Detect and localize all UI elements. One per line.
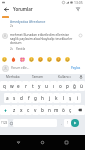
button[interactable]: o (57, 81, 64, 91)
staticText: . (61, 121, 62, 126)
staticText: u (45, 83, 48, 89)
button[interactable]: mehmet Bunadan etiketledim ellerinize sa… (2, 33, 83, 51)
button[interactable]: Shift (0, 105, 11, 115)
button[interactable]: b (39, 105, 46, 115)
staticText: 2s (10, 24, 14, 28)
staticText: ö (62, 107, 65, 113)
staticText: q (3, 83, 6, 89)
staticText: j (49, 95, 51, 101)
button[interactable]: Emoji (55, 56, 61, 62)
staticText: n (48, 107, 51, 113)
button[interactable]: j (46, 93, 53, 103)
button[interactable]: i (74, 93, 81, 103)
button[interactable]: h (39, 93, 46, 103)
staticText: o (59, 83, 62, 89)
button[interactable]: Emoji (37, 56, 43, 62)
staticText: l (63, 95, 65, 101)
button[interactable]: c (25, 105, 32, 115)
staticText: s (13, 95, 16, 101)
button[interactable]: e (15, 81, 22, 91)
staticText: #medyatica #freelance (10, 19, 46, 23)
button[interactable]: z (11, 105, 18, 115)
button[interactable]: Merhaba (0, 74, 25, 80)
staticText: d (20, 95, 23, 101)
button[interactable]: k (53, 93, 60, 103)
button[interactable]: ş (67, 93, 74, 103)
button[interactable]: Emoji (10, 56, 16, 62)
staticText: ı (53, 83, 55, 89)
staticText: w (10, 83, 14, 89)
staticText: e (17, 83, 20, 89)
button[interactable]: q (0, 81, 8, 91)
staticText: ç (69, 107, 72, 113)
button[interactable]: Paylas (70, 65, 82, 71)
staticText: Kullanıcı (58, 75, 71, 79)
button[interactable]: Emoji (1, 56, 7, 62)
button[interactable]: Tamam (25, 74, 51, 80)
staticText: g (34, 95, 37, 101)
staticText: p (66, 83, 69, 89)
button[interactable]: p (64, 81, 71, 91)
staticText: m (54, 107, 59, 113)
staticText: ş (69, 95, 72, 101)
button[interactable]: f (25, 93, 32, 103)
button[interactable]: ğ (71, 81, 78, 91)
staticText: ğ (73, 83, 76, 89)
button[interactable]: x (18, 105, 25, 115)
button[interactable]: ö (60, 105, 67, 115)
button[interactable]: Emoji keyboard (9, 119, 13, 127)
button[interactable]: Voice input (77, 74, 85, 80)
button[interactable]: ?123 (0, 119, 8, 127)
button[interactable]: r (22, 81, 29, 91)
button[interactable]: s (11, 93, 18, 103)
button[interactable]: Emoji (64, 56, 70, 62)
button[interactable]: Emoji (19, 56, 25, 62)
button[interactable]: ı (50, 81, 57, 91)
button[interactable]: Back (13, 137, 24, 148)
button[interactable]: m (53, 105, 60, 115)
button[interactable]: a (4, 93, 11, 103)
staticText: b (41, 107, 44, 113)
staticText: ?123 (1, 121, 8, 125)
button[interactable]: Back (2, 5, 10, 13)
staticText: z (13, 107, 16, 113)
button[interactable]: . (59, 119, 63, 127)
button[interactable]: Home (37, 137, 48, 148)
button[interactable]: n (46, 105, 53, 115)
staticText: Paylas (71, 66, 81, 70)
button[interactable]: ü (78, 81, 85, 91)
button[interactable]: w (8, 81, 15, 91)
button[interactable]: ç (67, 105, 74, 115)
staticText: k (55, 95, 58, 101)
button[interactable]: Recent apps (61, 137, 72, 148)
button[interactable]: Backspace (74, 105, 85, 115)
staticText: Yanıtla (16, 47, 26, 51)
staticText: r (25, 83, 27, 89)
button[interactable]: ! (64, 119, 71, 127)
button[interactable]: l (60, 93, 67, 103)
staticText: t (32, 83, 34, 89)
button[interactable]: t (29, 81, 36, 91)
staticText: Yorumlar (13, 6, 33, 12)
button[interactable]: Kullanıcı (51, 74, 77, 80)
staticText: ü (80, 83, 83, 89)
staticText: x (20, 107, 23, 113)
staticText: 2s (10, 47, 13, 51)
staticText: a (6, 95, 9, 101)
button[interactable]: u (43, 81, 50, 91)
staticText: c (27, 107, 30, 113)
button[interactable]: Filter (74, 5, 82, 13)
button[interactable]: Emoji (28, 56, 34, 62)
staticText: Merhaba (6, 75, 20, 79)
staticText: Tamam (32, 75, 44, 79)
button[interactable]: y (36, 81, 43, 91)
button[interactable]: Send (71, 119, 79, 127)
button[interactable]: Emoji (46, 56, 52, 62)
button[interactable]: g (32, 93, 39, 103)
staticText: h (41, 95, 44, 101)
button[interactable]: v (32, 105, 39, 115)
button[interactable]: Like (78, 33, 83, 38)
staticText: mehmet Bunadan etiketledim ellerinize sa… (10, 33, 77, 45)
button[interactable]: d (18, 93, 25, 103)
